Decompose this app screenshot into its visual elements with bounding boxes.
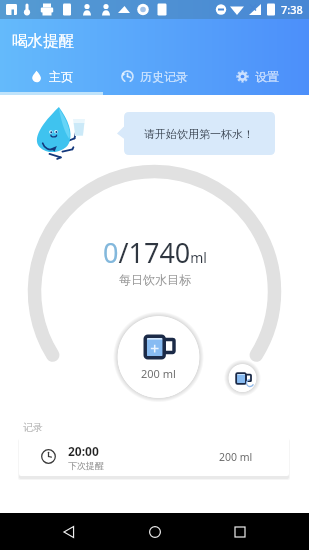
button[interactable]: 历史记录 — [103, 69, 206, 84]
button[interactable]: 切换杯子 — [229, 365, 256, 392]
button[interactable]: 返回 — [52, 515, 86, 549]
staticText: 20:00 — [68, 443, 99, 459]
staticText: 200 ml — [219, 450, 253, 464]
staticText: 请开始饮用第一杯水！ — [144, 127, 254, 141]
button[interactable]: 设置 — [206, 69, 309, 84]
staticText: 主页 — [49, 69, 73, 84]
staticText: 0/1740ml — [103, 234, 207, 271]
staticText: 200 ml — [141, 366, 176, 381]
staticText: 每日饮水目标 — [119, 272, 191, 287]
staticText: 喝水提醒 — [12, 31, 74, 51]
button[interactable]: 主页 — [0, 69, 103, 84]
staticText: 记录 — [23, 421, 43, 434]
staticText: 历史记录 — [140, 69, 188, 84]
button[interactable]: 最近任务 — [223, 515, 257, 549]
button[interactable]: 20:00 — [19, 437, 289, 476]
staticText: 7:38 — [281, 2, 303, 17]
staticText: 下次提醒 — [68, 460, 104, 471]
button[interactable]: 200 ml — [118, 317, 199, 398]
button[interactable]: 主屏幕 — [138, 515, 172, 549]
staticText: 设置 — [255, 69, 279, 84]
